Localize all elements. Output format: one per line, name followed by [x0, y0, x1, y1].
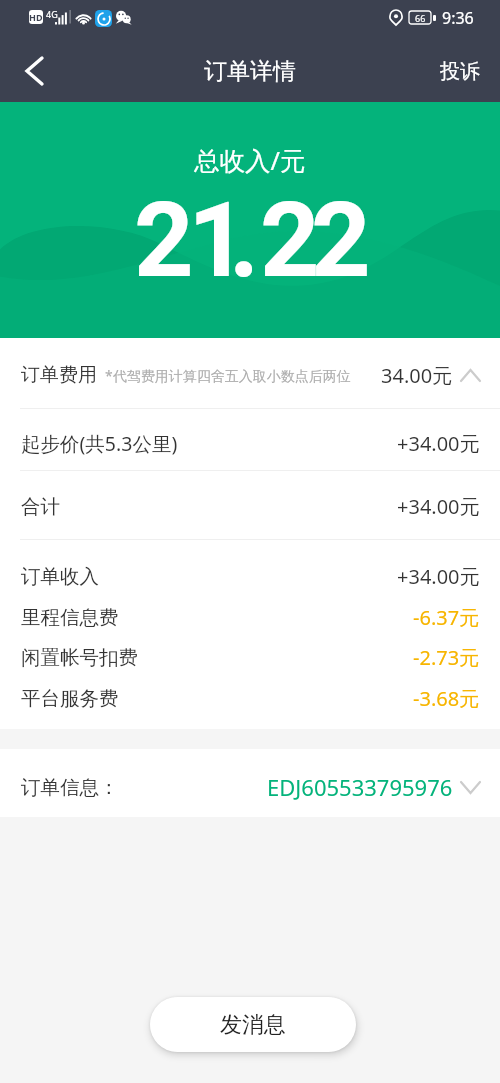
button[interactable]: 订单费用 — [0, 338, 500, 408]
staticText: 34.00元 — [381, 362, 453, 389]
staticText: +34.00元 — [397, 563, 480, 590]
staticText: 9:36 — [442, 7, 474, 29]
staticText: 起步价(共5.3公里) — [21, 430, 178, 457]
staticText: HD — [29, 11, 43, 23]
staticText: *代驾费用计算四舍五入取小数点后两位 — [105, 366, 351, 385]
staticText: -3.68元 — [413, 685, 480, 712]
staticText: +34.00元 — [397, 430, 480, 457]
staticText: -6.37元 — [413, 604, 480, 631]
staticText: 合计 — [21, 494, 60, 519]
staticText: 闲置帐号扣费 — [21, 645, 138, 670]
staticText: 1 — [188, 180, 248, 290]
staticText: 订单详情 — [204, 57, 296, 86]
button[interactable]: 订单信息： — [0, 749, 500, 817]
staticText: 2 — [134, 180, 194, 290]
staticText: 66 — [415, 12, 426, 24]
staticText: 投诉 — [440, 59, 480, 84]
button[interactable]: 发消息 — [150, 997, 356, 1052]
staticText: EDJ605533795976 — [267, 772, 453, 802]
staticText: 平台服务费 — [21, 686, 119, 711]
staticText: 发消息 — [220, 1011, 286, 1039]
staticText: +34.00元 — [397, 493, 480, 520]
staticText: 总收入/元 — [194, 143, 306, 178]
staticText: 2 — [260, 180, 320, 290]
staticText: 订单费用 — [21, 363, 97, 387]
staticText: . — [229, 180, 260, 290]
staticText: 订单收入 — [21, 564, 99, 589]
staticText: -2.73元 — [413, 644, 480, 671]
button[interactable]: 投诉 — [420, 40, 500, 102]
button[interactable]: Back — [0, 40, 68, 102]
staticText: 2 — [311, 180, 371, 290]
staticText: 4G — [46, 8, 58, 20]
staticText: 里程信息费 — [21, 605, 119, 630]
staticText: 订单信息： — [21, 775, 119, 800]
